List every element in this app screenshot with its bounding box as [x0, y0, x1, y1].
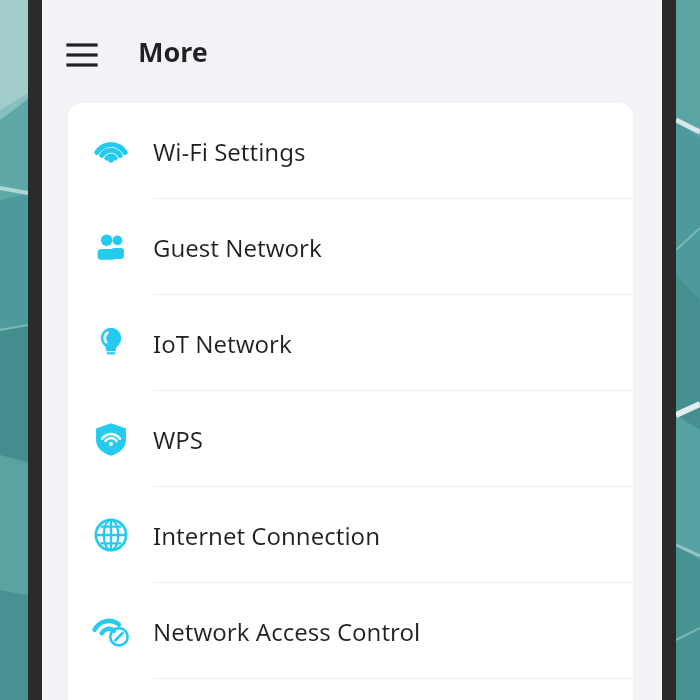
staticText: Wi-Fi Settings — [153, 135, 306, 168]
staticText: WPS — [153, 423, 204, 456]
staticText: More — [138, 33, 208, 70]
staticText: Network Access Control — [153, 615, 421, 648]
button[interactable]: Guest Network — [68, 199, 633, 295]
button[interactable]: WPS — [68, 391, 633, 487]
staticText: IoT Network — [153, 327, 292, 360]
button[interactable]: Open navigation menu — [54, 24, 110, 80]
button[interactable]: Internet Connection — [68, 487, 633, 583]
staticText: Guest Network — [153, 231, 322, 264]
button[interactable]: Network Access Control — [68, 583, 633, 679]
button[interactable]: IoT Network — [68, 295, 633, 391]
button[interactable]: Wi-Fi Settings — [68, 103, 633, 199]
staticText: Internet Connection — [153, 519, 380, 552]
